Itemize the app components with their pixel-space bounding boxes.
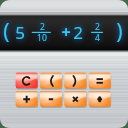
staticText: ) bbox=[116, 17, 123, 46]
staticText: 2 bbox=[73, 21, 83, 44]
staticText: 10 bbox=[37, 32, 47, 44]
staticText: 4 bbox=[95, 32, 100, 44]
staticText: 5 bbox=[15, 21, 25, 44]
staticText: ( bbox=[3, 17, 10, 46]
staticText: + bbox=[61, 21, 71, 43]
staticText: 2 bbox=[95, 21, 100, 33]
staticText: 2 bbox=[40, 21, 45, 33]
